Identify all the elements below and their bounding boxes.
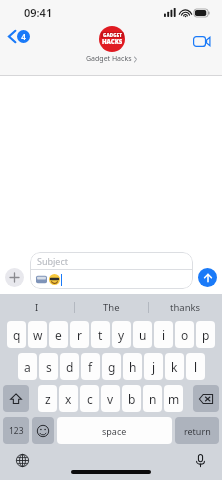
staticText: f (88, 359, 93, 375)
staticText: t (98, 327, 103, 343)
button[interactable]: FaceTime video call (189, 32, 214, 51)
staticText: e (55, 327, 62, 343)
staticText: h (129, 359, 137, 375)
staticText: w (33, 327, 43, 343)
button[interactable]: Change keyboard language (12, 450, 32, 470)
button[interactable]: x (59, 385, 78, 412)
staticText: v (107, 391, 114, 407)
button[interactable]: t (91, 321, 110, 348)
button[interactable]: Numbers and symbols (3, 417, 29, 444)
button[interactable]: h (123, 353, 142, 380)
button[interactable]: Add attachment (5, 268, 24, 287)
staticText: m (168, 391, 180, 407)
button[interactable]: return (175, 417, 219, 444)
staticText: i (162, 327, 166, 343)
staticText: u (139, 327, 147, 343)
button[interactable]: I (0, 294, 74, 321)
button[interactable]: p (196, 321, 215, 348)
button[interactable]: GADGET (86, 26, 137, 64)
staticText: 123 (9, 425, 24, 437)
staticText: x (65, 391, 72, 407)
staticText: g (108, 359, 116, 375)
staticText: The (103, 301, 120, 314)
button[interactable]: j (144, 353, 163, 380)
button[interactable]: n (143, 385, 162, 412)
button[interactable]: c (80, 385, 99, 412)
button[interactable]: z (38, 385, 57, 412)
staticText: b (128, 391, 136, 407)
staticText: y (118, 327, 125, 343)
button[interactable]: Subject (30, 252, 193, 289)
staticText: k (171, 359, 178, 375)
staticText: o (181, 327, 189, 343)
button[interactable]: f (81, 353, 100, 380)
staticText: j (152, 359, 156, 375)
staticText: space (102, 425, 127, 437)
button[interactable]: Shift (3, 385, 29, 412)
button[interactable]: Dictation (190, 450, 210, 470)
button[interactable]: u (133, 321, 152, 348)
button[interactable]: k (165, 353, 184, 380)
staticText: GADGET (103, 32, 122, 38)
button[interactable]: e (49, 321, 68, 348)
button[interactable]: s (39, 353, 58, 380)
staticText: thanks (170, 301, 201, 314)
staticText: Subject (37, 255, 69, 267)
button[interactable]: thanks (149, 294, 222, 321)
button[interactable]: w (28, 321, 47, 348)
button[interactable]: Backspace (193, 385, 219, 412)
button[interactable]: y (112, 321, 131, 348)
staticText: d (66, 359, 74, 375)
button[interactable]: r (70, 321, 89, 348)
staticText: r (77, 327, 82, 343)
staticText: I (35, 301, 39, 314)
staticText: q (13, 327, 21, 343)
staticText: z (45, 391, 51, 407)
button[interactable]: space (57, 417, 172, 444)
staticText: l (194, 359, 198, 375)
button[interactable]: m (164, 385, 183, 412)
button[interactable]: Send message (198, 268, 217, 287)
button[interactable]: o (175, 321, 194, 348)
staticText: return (184, 425, 211, 437)
staticText: c (87, 391, 93, 407)
staticText: a (24, 359, 31, 375)
button[interactable]: Emoji keyboard (32, 417, 54, 444)
staticText: 4 (21, 31, 26, 42)
button[interactable]: g (102, 353, 121, 380)
staticText: Gadget Hacks (86, 54, 132, 64)
button[interactable]: i (154, 321, 173, 348)
staticText: s (46, 359, 52, 375)
button[interactable]: a (18, 353, 37, 380)
staticText: HACKS (102, 38, 123, 46)
button[interactable]: q (7, 321, 26, 348)
staticText: n (149, 391, 157, 407)
button[interactable]: b (122, 385, 141, 412)
button[interactable]: d (60, 353, 79, 380)
button[interactable]: Back, 4 unread (4, 27, 34, 46)
button[interactable]: v (101, 385, 120, 412)
staticText: 09:41 (24, 5, 53, 20)
button[interactable]: l (186, 353, 205, 380)
button[interactable]: The (75, 294, 148, 321)
staticText: p (202, 327, 210, 343)
